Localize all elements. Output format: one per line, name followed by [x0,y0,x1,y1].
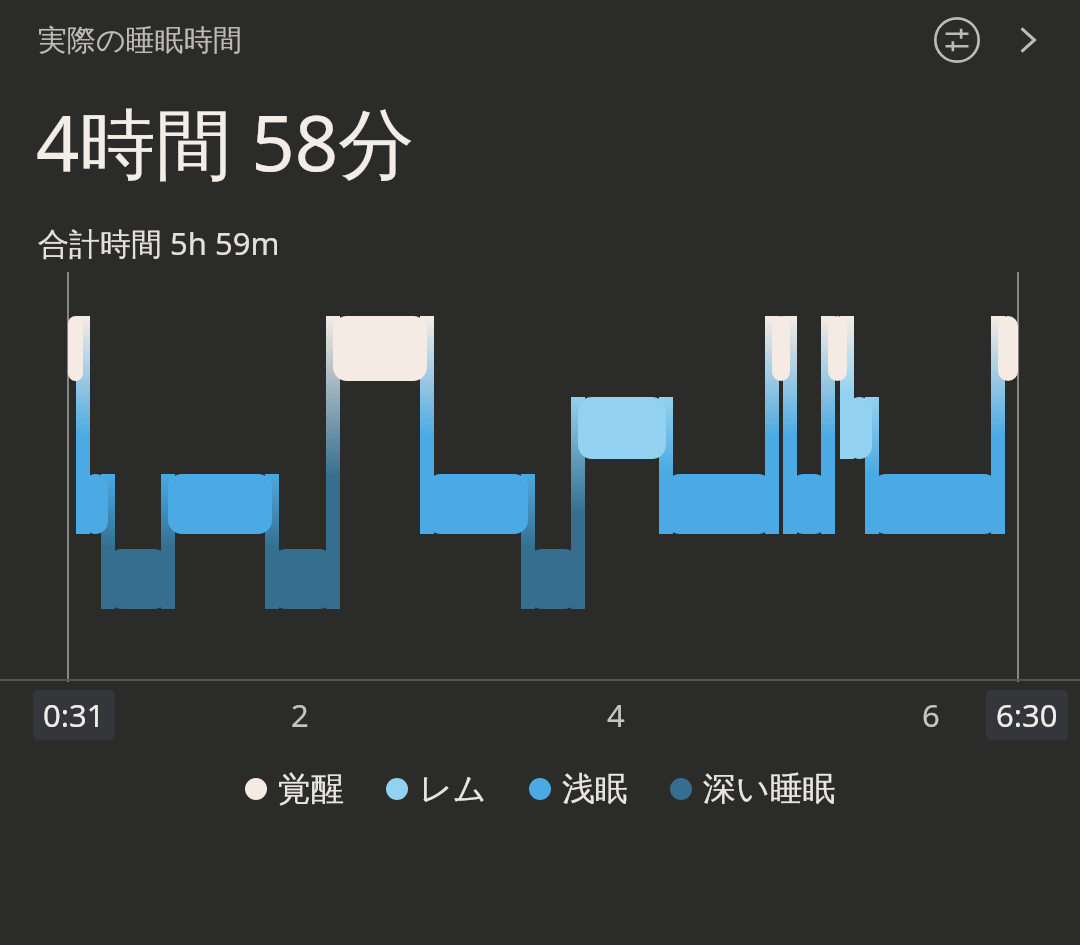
staticText: 6:30 [996,694,1058,736]
button[interactable]: レム [386,768,487,810]
button[interactable]: 0:31 [33,690,115,740]
staticText: 合計時間 5h 59m [38,222,280,264]
staticText: 2 [291,694,309,736]
staticText: 深い睡眠 [703,768,836,810]
button[interactable]: 浅眠 [529,768,628,810]
staticText: 覚醒 [278,768,344,810]
staticText: 浅眠 [562,768,628,810]
staticText: 4時間 58分 [36,90,415,194]
button[interactable]: Sleep settings [928,11,986,69]
staticText: 実際の睡眠時間 [38,22,242,59]
staticText: 6 [922,694,940,736]
button[interactable]: 覚醒 [245,768,344,810]
button[interactable]: 6:30 [986,690,1068,740]
staticText: レム [419,768,487,810]
staticText: 0:31 [43,694,105,736]
staticText: 4 [607,694,625,736]
button[interactable]: 深い睡眠 [670,768,836,810]
button[interactable]: Open sleep details [1000,13,1054,67]
button[interactable] [0,264,1080,684]
